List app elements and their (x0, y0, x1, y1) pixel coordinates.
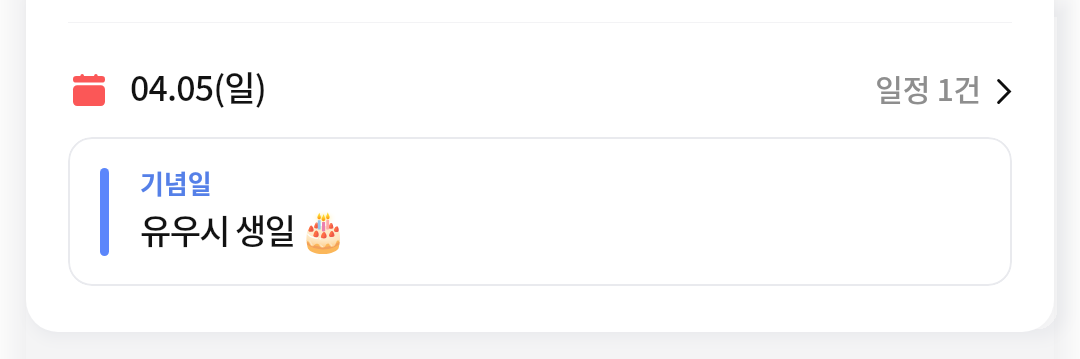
other: View schedule (997, 79, 1011, 104)
button[interactable]: 04.05(일) (68, 58, 1012, 120)
staticText: 일정 1건 (773, 66, 981, 109)
button[interactable]: 기념일 (68, 137, 1012, 286)
staticText: 유우시 생일 (140, 205, 295, 254)
staticText: 🎂 (299, 209, 348, 255)
staticText: 기념일 (140, 164, 212, 202)
staticText: 04.05(일) (130, 62, 266, 111)
